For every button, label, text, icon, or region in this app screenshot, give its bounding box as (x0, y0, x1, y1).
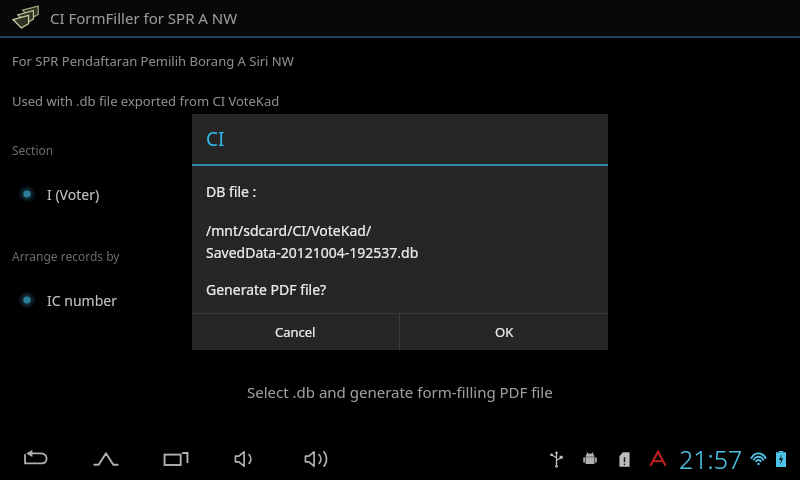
button[interactable]: Home (84, 438, 128, 480)
staticText: Generate PDF file? (206, 280, 327, 299)
staticText: /mnt/sdcard/CI/VoteKad/ (206, 221, 372, 240)
staticText: I (Voter) (47, 185, 100, 204)
staticText: Used with .db file exported from CI Vote… (12, 92, 280, 110)
staticText: DB file : (206, 182, 257, 201)
staticText: IC number (47, 291, 117, 310)
button[interactable]: Volume up (294, 438, 338, 480)
button[interactable]: Volume down (224, 438, 268, 480)
staticText: Cancel (275, 323, 316, 341)
button[interactable]: Recent apps (154, 438, 198, 480)
staticText: For SPR Pendaftaran Pemilih Borang A Sir… (12, 52, 294, 70)
staticText: Arrange records by (12, 248, 120, 264)
button[interactable]: IC number (0, 286, 800, 314)
button[interactable]: Cancel (192, 314, 399, 350)
staticText: OK (495, 323, 514, 341)
staticText: Select .db and generate form-filling PDF… (247, 382, 553, 402)
button[interactable]: I (Voter) (0, 180, 800, 208)
staticText: 21:57 (679, 442, 743, 476)
button[interactable]: OK (400, 314, 608, 350)
staticText: Section (12, 142, 54, 158)
staticText: SavedData-20121004-192537.db (206, 243, 419, 262)
staticText: CI FormFiller for SPR A NW (50, 8, 238, 28)
staticText: CI (206, 126, 225, 152)
button[interactable]: Back (14, 438, 58, 480)
